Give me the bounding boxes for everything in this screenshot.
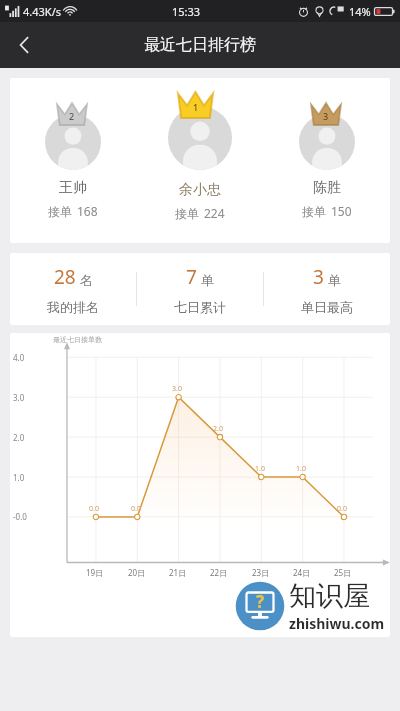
staticText: 余小忠 bbox=[179, 181, 221, 199]
staticText: 2.0 bbox=[13, 432, 25, 443]
staticText: 4.0 bbox=[13, 352, 25, 363]
button[interactable]: 3 bbox=[264, 264, 390, 315]
staticText: 3.0 bbox=[13, 392, 25, 403]
staticText: 0.0 bbox=[89, 504, 99, 514]
staticText: ? bbox=[256, 590, 265, 613]
staticText: 4.43K/s bbox=[23, 4, 61, 19]
staticText: 我的排名 bbox=[47, 299, 99, 315]
staticText: 单日最高 bbox=[301, 299, 353, 315]
staticText: 接单 bbox=[48, 204, 72, 219]
staticText: 1 bbox=[193, 101, 199, 113]
staticText: 2 bbox=[69, 110, 75, 122]
staticText: 接单 bbox=[175, 206, 199, 221]
staticText: 168 bbox=[77, 203, 98, 219]
staticText: 3 bbox=[313, 264, 324, 290]
staticText: 20日 bbox=[128, 567, 146, 578]
staticText: 24日 bbox=[293, 567, 311, 578]
staticText: 0.0 bbox=[337, 504, 347, 514]
staticText: 陈胜 bbox=[313, 179, 341, 197]
staticText: 接单 bbox=[302, 204, 326, 219]
staticText: 单 bbox=[328, 272, 341, 288]
staticText: 15:33 bbox=[172, 4, 201, 19]
staticText: 25日 bbox=[334, 567, 352, 578]
staticText: 23日 bbox=[252, 567, 270, 578]
staticText: 单 bbox=[201, 272, 214, 288]
staticText: 七日累计 bbox=[174, 299, 226, 315]
staticText: 1.0 bbox=[296, 464, 306, 474]
button[interactable]: 2 bbox=[10, 78, 136, 219]
button[interactable]: 3 bbox=[263, 78, 390, 219]
button[interactable]: 7 bbox=[137, 264, 263, 315]
staticText: 知识屋 bbox=[289, 579, 370, 613]
staticText: 14% bbox=[349, 4, 371, 19]
staticText: 1.0 bbox=[255, 464, 265, 474]
staticText: 28 bbox=[54, 264, 76, 290]
staticText: 1.0 bbox=[13, 472, 25, 483]
button[interactable]: Back bbox=[4, 24, 46, 66]
staticText: 2.0 bbox=[213, 424, 223, 434]
staticText: 3 bbox=[323, 110, 329, 122]
staticText: 19日 bbox=[86, 567, 104, 578]
staticText: 150 bbox=[331, 203, 352, 219]
staticText: 王帅 bbox=[59, 179, 87, 197]
staticText: zhishiwu.com bbox=[289, 614, 385, 633]
staticText: 0.0 bbox=[131, 504, 141, 514]
staticText: 7 bbox=[186, 264, 197, 290]
staticText: 22日 bbox=[210, 567, 228, 578]
staticText: 最近七日排行榜 bbox=[144, 35, 256, 55]
staticText: 224 bbox=[204, 205, 225, 221]
button[interactable]: 1 bbox=[136, 78, 263, 221]
staticText: 名 bbox=[80, 272, 93, 288]
staticText: -0.0 bbox=[13, 511, 27, 522]
button[interactable]: 28 bbox=[10, 264, 136, 315]
staticText: 3.0 bbox=[172, 384, 182, 394]
staticText: 21日 bbox=[169, 567, 187, 578]
staticText: 最近七日接单数 bbox=[53, 335, 102, 344]
